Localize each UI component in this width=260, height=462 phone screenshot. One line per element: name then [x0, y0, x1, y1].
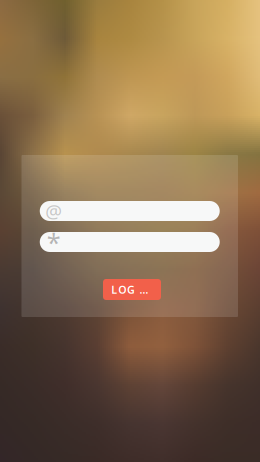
- staticText: *: [47, 225, 61, 259]
- button[interactable]: Password: [40, 232, 220, 252]
- staticText: @: [45, 199, 62, 223]
- staticText: LOG IN: [111, 282, 153, 297]
- button[interactable]: Email address: [40, 201, 220, 221]
- button[interactable]: LOG IN: [103, 279, 161, 300]
